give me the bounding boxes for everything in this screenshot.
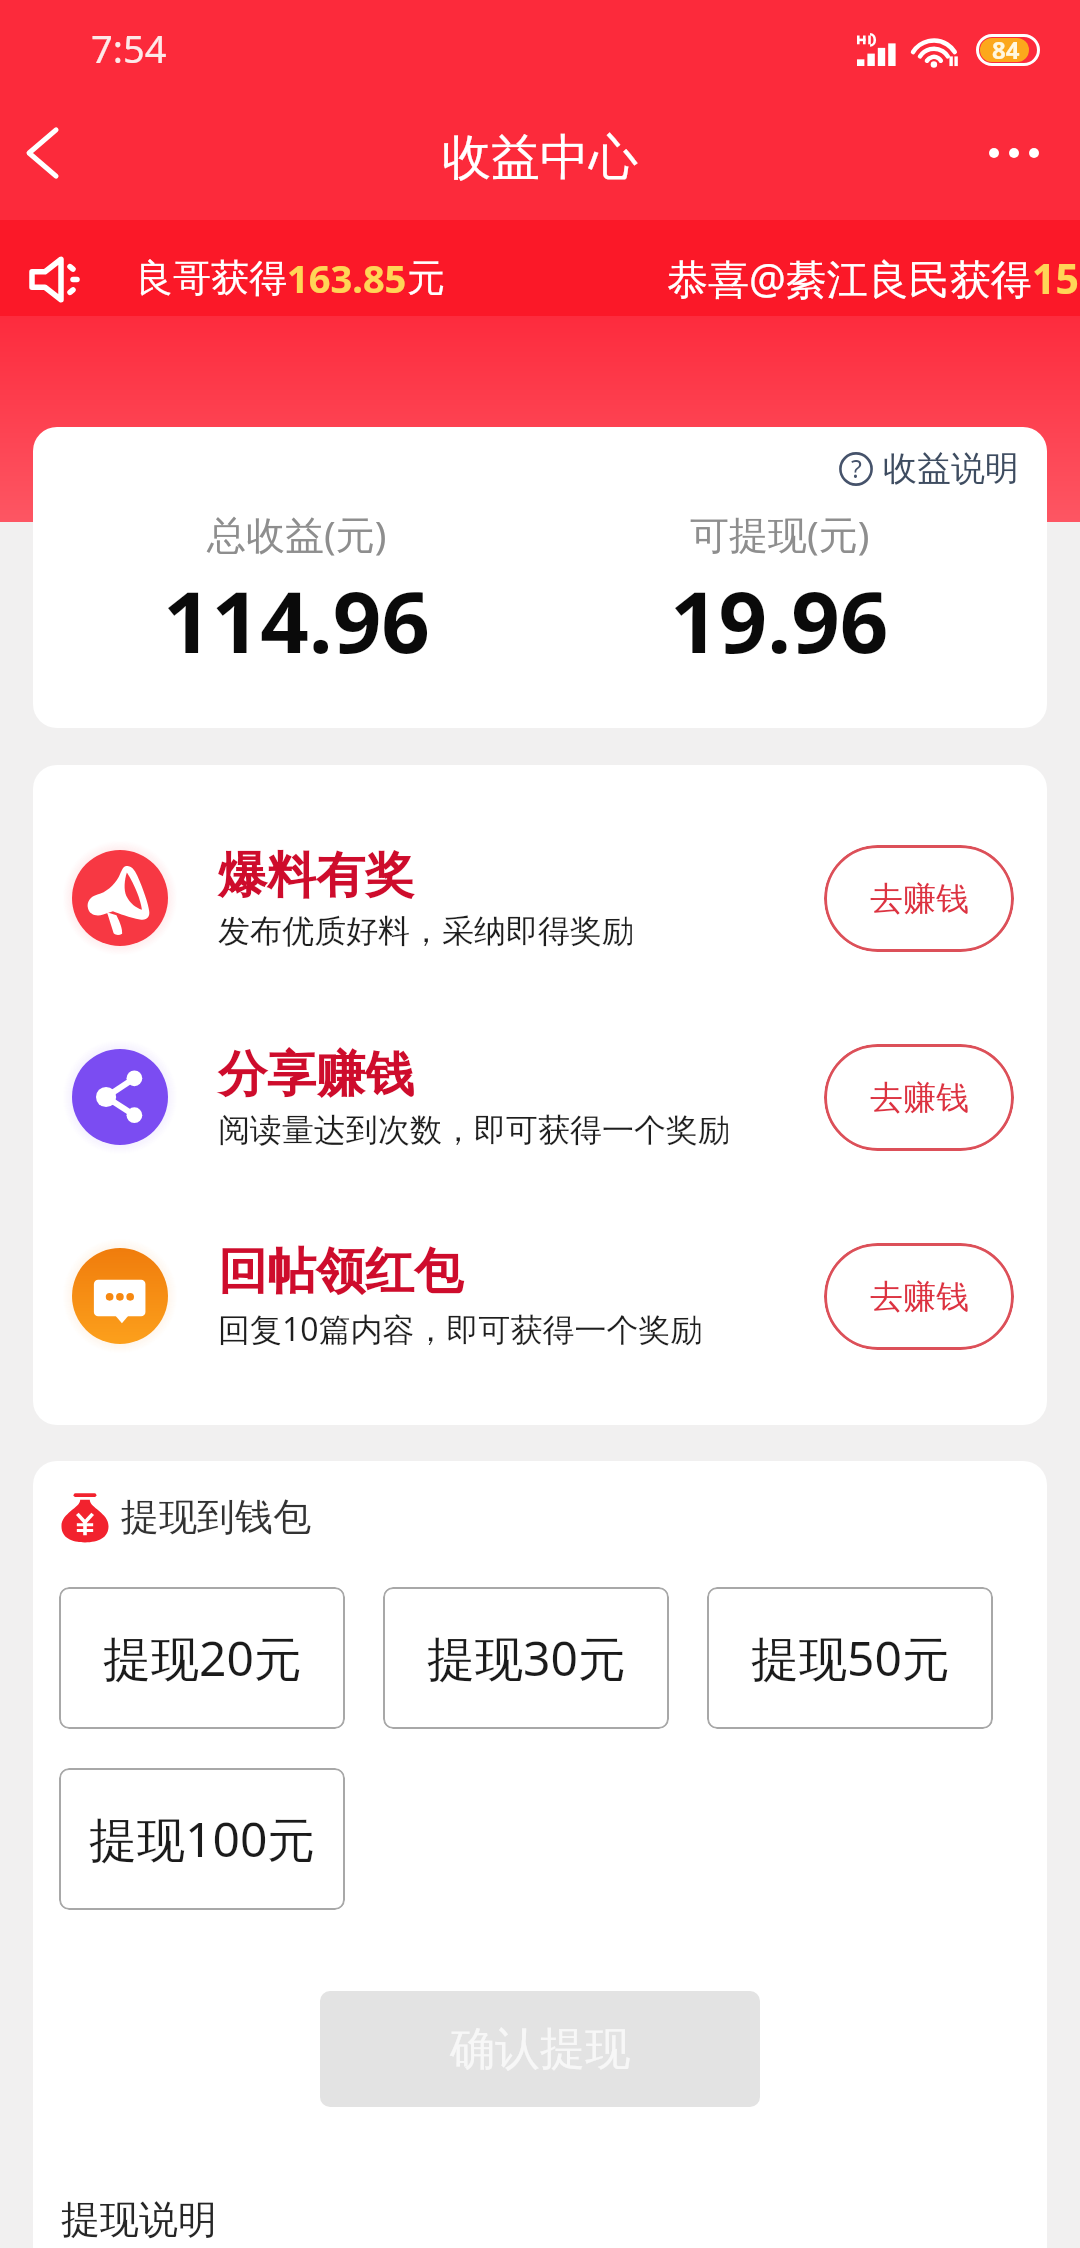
staticText: 良哥获得 [135,254,287,302]
staticText: 15 [1032,250,1079,306]
staticText: 元 [407,254,445,302]
staticText: 提现50元 [751,1625,950,1691]
button[interactable]: 确认提现 [320,1991,760,2107]
staticText: 恭喜@綦江良民获得 [667,250,1032,306]
staticText: 总收益(元) [207,507,387,560]
staticText: 收益说明 [883,447,1019,490]
staticText: 提现100元 [89,1806,316,1872]
button[interactable]: 分享赚钱 [72,1037,1014,1157]
staticText: 提现到钱包 [121,1493,311,1541]
staticText: 分享赚钱 [218,1044,414,1106]
staticText: 回帖领红包 [218,1241,463,1303]
staticText: 84 [992,33,1020,65]
button[interactable]: Back [0,111,84,195]
staticText: 114.96 [163,562,430,678]
staticText: 去赚钱 [870,878,969,920]
staticText: 去赚钱 [870,1276,969,1318]
button[interactable]: 提现50元 [707,1587,993,1729]
staticText: ? [851,451,862,485]
staticText: 提现20元 [103,1625,302,1691]
button[interactable]: 提现30元 [383,1587,669,1729]
button[interactable]: 去赚钱 [824,1243,1014,1350]
staticText: 收益中心 [442,127,638,189]
staticText: 发布优质好料，采纳即得奖励 [218,911,634,951]
staticText: 确认提现 [450,2021,630,2078]
staticText: 阅读量达到次数，即可获得一个奖励 [218,1110,730,1150]
staticText: 去赚钱 [870,1077,969,1119]
staticText: 19.96 [670,562,889,678]
staticText: 回复10篇内容，即可获得一个奖励 [218,1307,703,1351]
button[interactable]: 提现100元 [59,1768,345,1910]
staticText: 爆料有奖 [218,845,414,907]
staticText: 可提现(元) [690,507,870,560]
staticText: 7:54 [91,22,167,74]
staticText: 163.85 [287,252,407,304]
button[interactable]: 良哥获得 [0,220,1080,316]
staticText: 提现30元 [427,1625,626,1691]
button[interactable]: 爆料有奖 [72,838,1014,958]
button[interactable]: 去赚钱 [824,845,1014,952]
button[interactable]: 提现20元 [59,1587,345,1729]
staticText: 提现说明 [61,2195,217,2244]
button[interactable]: 去赚钱 [824,1044,1014,1151]
button[interactable]: More options [972,111,1056,195]
button[interactable]: ? [833,441,1025,496]
button[interactable]: 回帖领红包 [72,1236,1014,1356]
